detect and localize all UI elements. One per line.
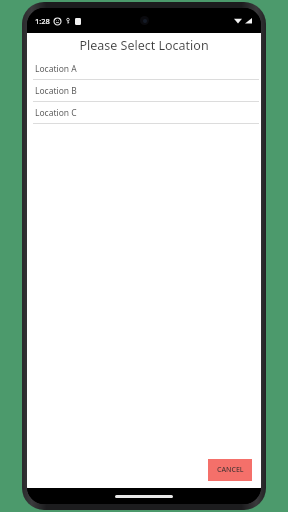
staticText: CANCEL xyxy=(217,465,244,475)
staticText: Location B xyxy=(35,85,77,97)
staticText: Location A xyxy=(35,63,77,75)
button[interactable]: Location A xyxy=(27,58,261,80)
button[interactable]: Location C xyxy=(27,102,261,124)
button[interactable]: Location B xyxy=(27,80,261,102)
staticText: Please Select Location xyxy=(79,37,209,54)
staticText: Location C xyxy=(35,107,77,119)
staticText: 1:28 xyxy=(35,16,50,26)
button[interactable]: CANCEL xyxy=(208,459,252,481)
